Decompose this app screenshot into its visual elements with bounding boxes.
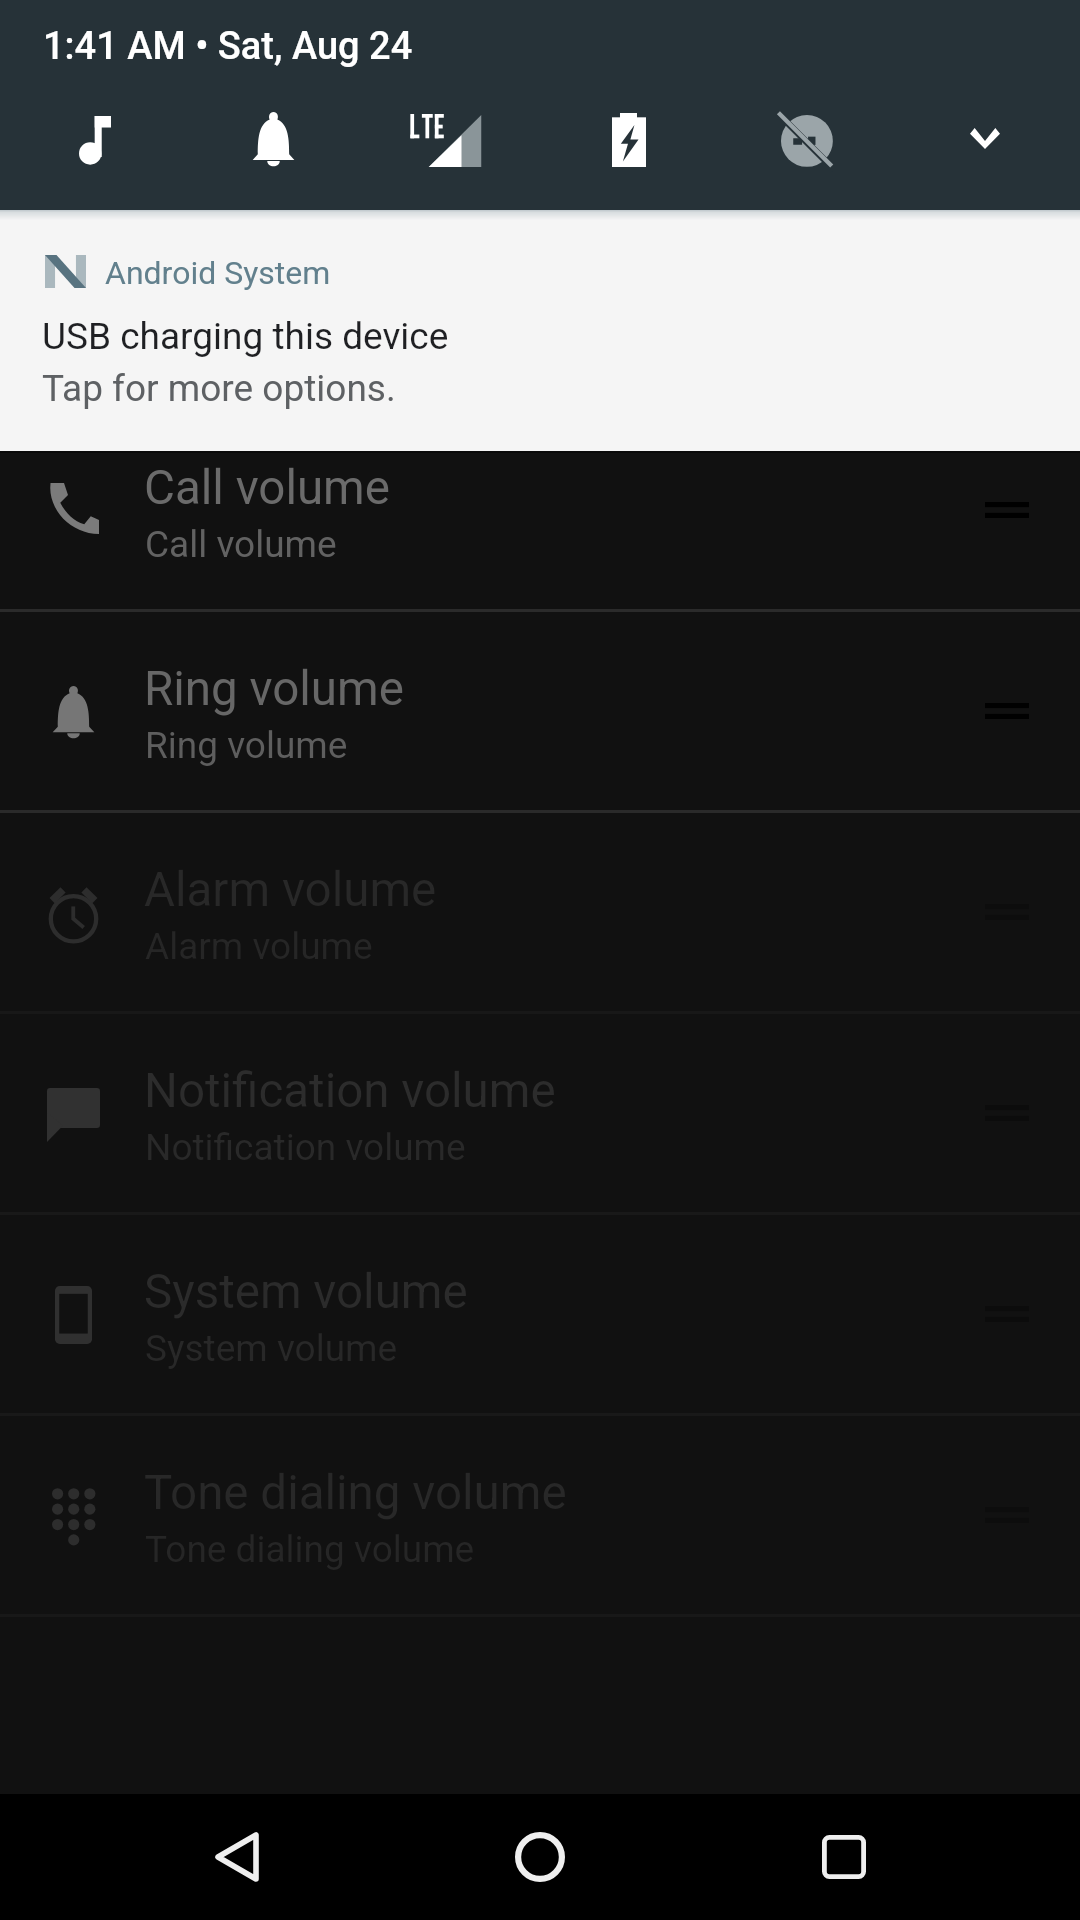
button[interactable]: Back [167, 1794, 307, 1920]
button[interactable]: System volume [0, 1215, 1080, 1413]
button[interactable]: Ring volume [0, 612, 1080, 810]
button[interactable]: Notification volume [0, 1014, 1080, 1212]
staticText: 1:41 AM • Sat, Aug 24 [43, 24, 413, 69]
staticText: Alarm volume [144, 862, 437, 918]
button[interactable]: Android System [0, 210, 1080, 451]
button[interactable]: Home [470, 1794, 610, 1920]
button[interactable]: Alarm volume [0, 813, 1080, 1011]
staticText: Tone dialing volume [144, 1465, 567, 1521]
staticText: USB charging this device [42, 315, 449, 358]
staticText: Call volume [144, 460, 390, 516]
staticText: Call volume [145, 523, 337, 566]
staticText: Ring volume [144, 661, 404, 717]
staticText: System volume [145, 1327, 398, 1370]
staticText: Alarm volume [145, 925, 373, 968]
staticText: Tone dialing volume [145, 1528, 475, 1571]
staticText: Android System [105, 254, 331, 292]
button[interactable]: Recent apps [774, 1794, 914, 1920]
staticText: Ring volume [145, 724, 348, 767]
staticText: Notification volume [145, 1126, 466, 1169]
button[interactable]: Tone dialing volume [0, 1416, 1080, 1614]
button[interactable]: Expand quick settings [955, 110, 1015, 166]
staticText: System volume [144, 1264, 468, 1320]
staticText: Tap for more options. [42, 367, 396, 410]
staticText: Notification volume [144, 1063, 556, 1119]
button[interactable]: Call volume [0, 411, 1080, 609]
